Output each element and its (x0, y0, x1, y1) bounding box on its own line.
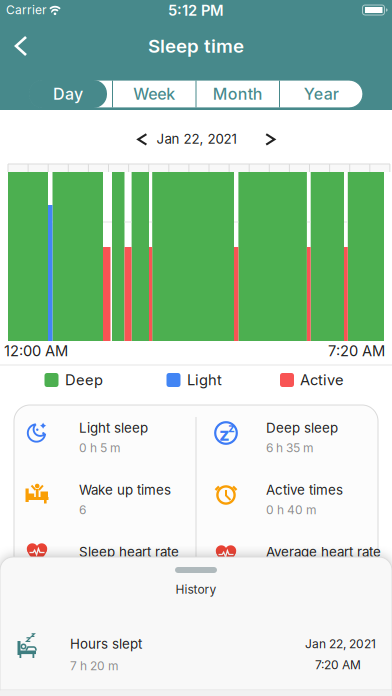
staticText: Day (53, 85, 83, 103)
staticText: History (175, 582, 216, 597)
button[interactable]: History (0, 557, 392, 605)
staticText: 7:20 AM (315, 658, 361, 672)
staticText: Average heart rate (266, 544, 381, 560)
staticText: Active times (266, 482, 343, 498)
staticText: Year (304, 85, 339, 103)
button[interactable]: Previous day (130, 127, 154, 151)
staticText: Sleep heart rate (79, 544, 179, 560)
staticText: 12:00 AM (4, 342, 68, 360)
staticText: Deep sleep (266, 420, 338, 436)
staticText: Week (133, 85, 175, 103)
staticText: 0 h 5 m (79, 441, 121, 455)
button[interactable]: Day (29, 80, 112, 108)
staticText: Sleep time (148, 35, 244, 57)
button[interactable]: Year (280, 80, 362, 108)
staticText: 6 h 35 m (266, 441, 314, 455)
staticText: 7 h 20 m (70, 659, 119, 673)
button[interactable]: Next day (258, 127, 282, 151)
staticText: 0 h 40 m (266, 503, 317, 517)
button[interactable]: Back (0, 24, 44, 68)
staticText: Light sleep (79, 420, 148, 436)
staticText: Jan 22, 2021 (156, 131, 236, 147)
button[interactable]: Month (197, 80, 279, 108)
staticText: Month (213, 85, 263, 103)
staticText: Hours slept (70, 636, 142, 652)
staticText: z (219, 423, 230, 445)
staticText: Jan 22, 2021 (305, 637, 376, 651)
staticText: 5:12 PM (168, 2, 224, 19)
staticText: Carrier (6, 3, 47, 17)
staticText: Deep (65, 371, 103, 389)
button[interactable]: Hours slept (0, 620, 392, 686)
staticText: Active (300, 371, 344, 389)
button[interactable]: Week (113, 80, 195, 108)
staticText: 6 (79, 503, 86, 517)
staticText: Light (187, 371, 222, 389)
staticText: 7:20 AM (328, 342, 385, 360)
staticText: z (228, 421, 235, 435)
staticText: Wake up times (79, 482, 171, 498)
